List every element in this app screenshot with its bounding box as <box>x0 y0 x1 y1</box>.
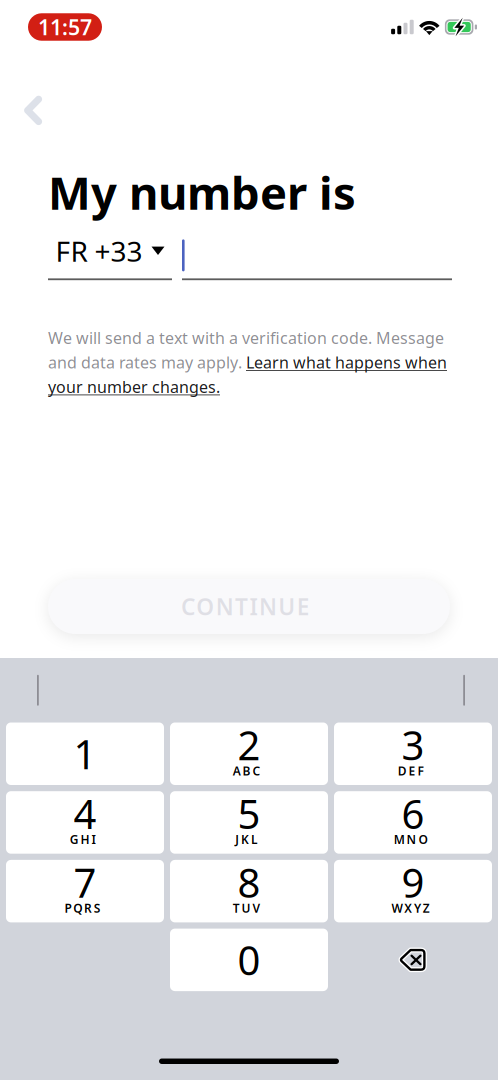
button[interactable]: 6 <box>334 791 492 854</box>
staticText: We will send a text with a verification … <box>48 327 444 348</box>
staticText: 4 <box>73 787 96 840</box>
button[interactable]: CONTINUE <box>48 579 450 634</box>
button[interactable]: your number changes. <box>48 376 220 397</box>
button[interactable]: 8 <box>170 860 328 922</box>
button[interactable]: 3 <box>334 722 492 785</box>
staticText: WXYZ <box>391 900 435 916</box>
staticText: 11:57 <box>38 13 92 41</box>
button[interactable]: 2 <box>170 722 328 785</box>
button[interactable]: 1 <box>6 722 164 785</box>
button[interactable]: 5 <box>170 791 328 854</box>
staticText: 3 <box>401 718 424 771</box>
staticText: JKL <box>235 831 263 847</box>
button[interactable]: 7 <box>6 860 164 922</box>
staticText: 0 <box>237 933 260 986</box>
staticText: 1 <box>73 727 96 780</box>
staticText: your number changes. <box>48 376 220 397</box>
button[interactable]: 9 <box>334 860 492 922</box>
staticText: and data rates may apply. <box>48 352 246 373</box>
button[interactable]: FR +33 <box>48 232 172 280</box>
button[interactable]: Learn what happens when <box>246 352 447 373</box>
staticText: 2 <box>237 718 260 771</box>
staticText: MNO <box>394 831 432 847</box>
staticText: CONTINUE <box>181 591 317 621</box>
staticText: 5 <box>237 787 260 840</box>
button[interactable]: 0 <box>170 929 328 991</box>
button[interactable]: Back <box>10 86 56 135</box>
staticText: PQRS <box>64 900 106 916</box>
staticText: My number is <box>48 162 356 222</box>
staticText: 9 <box>401 856 424 909</box>
staticText: ABC <box>233 763 265 779</box>
staticText: DEF <box>398 763 428 779</box>
staticText: TUV <box>233 900 265 916</box>
button[interactable]: Delete <box>334 929 492 991</box>
staticText: 8 <box>237 856 260 909</box>
staticText: 7 <box>73 856 96 909</box>
staticText: GHI <box>70 831 100 847</box>
staticText: FR +33 <box>55 232 142 269</box>
staticText: 6 <box>401 787 424 840</box>
button[interactable]: 4 <box>6 791 164 854</box>
staticText: Learn what happens when <box>246 352 447 373</box>
